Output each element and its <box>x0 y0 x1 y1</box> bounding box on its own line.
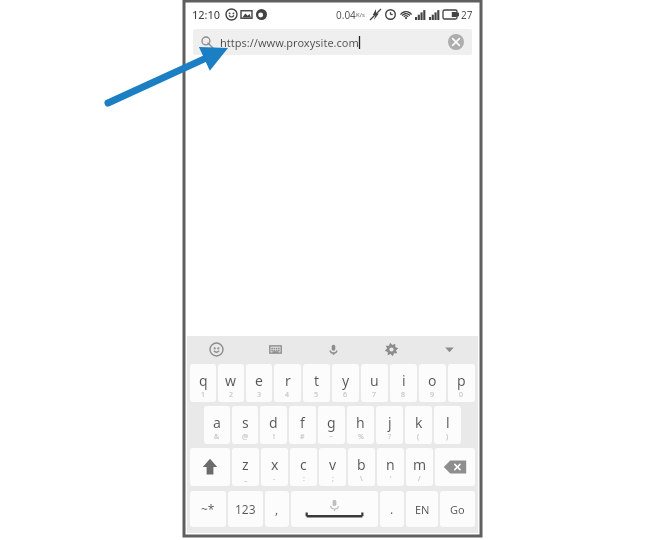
button[interactable]: p <box>448 364 475 402</box>
button[interactable]: Go <box>440 491 475 527</box>
button[interactable]: Space <box>291 491 378 527</box>
staticText: 4 <box>285 390 290 400</box>
button[interactable]: https://www.proxysite.com <box>193 29 472 55</box>
staticText: . <box>390 501 394 517</box>
staticText: K/s <box>356 11 365 19</box>
staticText: i <box>402 371 406 390</box>
staticText: t <box>314 371 320 390</box>
staticText: o <box>428 371 437 390</box>
button[interactable]: Clear <box>448 34 464 50</box>
staticText: 0.04 <box>336 8 356 22</box>
button[interactable]: Voice input <box>304 336 362 362</box>
button[interactable]: h <box>347 406 374 444</box>
staticText: c <box>300 455 307 474</box>
staticText: u <box>370 371 379 390</box>
button[interactable]: x <box>261 448 288 486</box>
staticText: ~ <box>329 432 334 442</box>
staticText: , <box>275 501 279 517</box>
staticText: h <box>356 413 365 432</box>
button[interactable]: e <box>246 364 272 402</box>
button[interactable]: . <box>380 491 404 527</box>
staticText: 123 <box>235 501 256 517</box>
button[interactable]: Keyboard <box>246 336 304 362</box>
button[interactable]: c <box>290 448 317 486</box>
button[interactable]: g <box>318 406 345 444</box>
staticText: 6 <box>343 390 348 400</box>
button[interactable]: EN <box>406 491 438 527</box>
staticText: EN <box>415 502 430 517</box>
button[interactable]: v <box>319 448 346 486</box>
staticText: 2 <box>229 390 234 400</box>
staticText: 3 <box>257 390 262 400</box>
staticText: r <box>285 371 291 390</box>
button[interactable]: 123 <box>228 491 263 527</box>
button[interactable]: r <box>274 364 301 402</box>
button[interactable]: o <box>419 364 446 402</box>
button[interactable]: Hide keyboard <box>420 336 478 362</box>
staticText: \ <box>360 474 363 484</box>
staticText: k <box>415 413 423 432</box>
staticText: j <box>388 413 392 432</box>
staticText: Go <box>450 502 465 517</box>
button[interactable]: ~* <box>190 491 226 527</box>
staticText: 1 <box>201 390 206 400</box>
staticText: p <box>457 371 466 390</box>
button[interactable]: w <box>218 364 244 402</box>
button[interactable]: u <box>361 364 388 402</box>
staticText: 12:10 <box>192 7 221 22</box>
button[interactable]: y <box>332 364 359 402</box>
staticText: ( <box>417 432 420 442</box>
staticText: m <box>413 455 427 474</box>
button[interactable]: q <box>190 364 216 402</box>
staticText: s <box>242 413 249 432</box>
staticText: ) <box>446 432 449 442</box>
button[interactable]: s <box>232 406 258 444</box>
staticText: @ <box>242 432 249 442</box>
button[interactable]: Backspace <box>435 448 475 486</box>
staticText: f <box>300 413 305 432</box>
staticText: & <box>214 432 220 442</box>
staticText: - <box>273 474 276 484</box>
button[interactable]: n <box>377 448 404 486</box>
staticText: _ <box>244 474 248 484</box>
staticText: n <box>386 455 395 474</box>
button[interactable]: , <box>265 491 289 527</box>
staticText: ~* <box>201 501 215 517</box>
button[interactable]: k <box>405 406 432 444</box>
button[interactable]: d <box>260 406 287 444</box>
button[interactable]: f <box>289 406 316 444</box>
button[interactable]: z <box>232 448 259 486</box>
button[interactable]: j <box>376 406 403 444</box>
staticText: 5 <box>314 390 319 400</box>
button[interactable]: i <box>390 364 417 402</box>
staticText: g <box>327 413 336 432</box>
staticText: z <box>242 455 249 474</box>
staticText: a <box>213 413 221 432</box>
button[interactable]: l <box>434 406 461 444</box>
button[interactable]: Settings <box>362 336 420 362</box>
staticText: ! <box>273 432 275 442</box>
staticText: / <box>418 474 421 484</box>
button[interactable]: t <box>303 364 330 402</box>
staticText: b <box>357 455 366 474</box>
staticText: # <box>300 432 305 442</box>
staticText: v <box>329 455 337 474</box>
button[interactable]: Shift <box>190 448 230 486</box>
staticText: d <box>269 413 278 432</box>
staticText: 7 <box>372 390 377 400</box>
staticText: w <box>225 371 237 390</box>
staticText: y <box>342 371 350 390</box>
staticText: q <box>199 371 208 390</box>
staticText: 8 <box>401 390 406 400</box>
staticText: ' <box>390 474 392 484</box>
button[interactable]: m <box>406 448 433 486</box>
button[interactable]: b <box>348 448 375 486</box>
staticText: x <box>271 455 279 474</box>
staticText: % <box>358 432 364 442</box>
staticText: ? <box>388 432 392 442</box>
staticText: l <box>446 413 450 432</box>
button[interactable]: Emoji <box>187 336 246 362</box>
staticText: 27 <box>461 8 473 22</box>
button[interactable]: a <box>204 406 230 444</box>
staticText: ; <box>332 474 334 484</box>
